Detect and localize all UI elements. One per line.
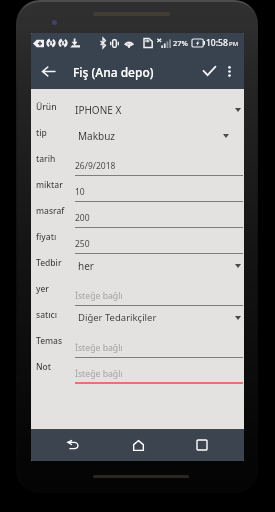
staticText: İsteğe bağlı xyxy=(75,342,123,354)
button[interactable]: tarih xyxy=(31,150,244,176)
staticText: Not xyxy=(36,361,52,373)
button[interactable]: Tedbir xyxy=(31,254,244,280)
staticText: 200 xyxy=(75,212,90,224)
staticText: Fiş (Ana depo) xyxy=(73,64,154,80)
button[interactable]: Home xyxy=(116,429,160,461)
staticText: 250 xyxy=(75,238,90,250)
staticText: masraf xyxy=(36,205,65,217)
button[interactable]: satıcı xyxy=(31,306,244,332)
button[interactable]: Ürün xyxy=(31,98,244,124)
staticText: 10:58 xyxy=(206,37,228,49)
staticText: her xyxy=(78,259,94,273)
button[interactable]: Not xyxy=(31,358,244,384)
staticText: tarih xyxy=(36,153,56,165)
staticText: İsteğe bağlı xyxy=(75,290,123,302)
button[interactable]: More options xyxy=(218,53,241,89)
button[interactable]: Navigate up xyxy=(33,53,63,89)
staticText: İsteğe bağlı xyxy=(75,368,123,380)
button[interactable]: Back xyxy=(51,429,95,461)
staticText: yer xyxy=(36,283,49,295)
staticText: 27% xyxy=(173,38,188,48)
staticText: tip xyxy=(36,127,47,139)
staticText: 10 xyxy=(75,186,85,198)
staticText: fiyatı xyxy=(36,231,57,243)
staticText: Ürün xyxy=(36,101,57,113)
button[interactable]: fiyatı xyxy=(31,228,244,254)
staticText: satıcı xyxy=(36,309,58,321)
button[interactable]: tip xyxy=(31,124,244,150)
staticText: Diğer Tedarikçiler xyxy=(78,311,157,324)
button[interactable]: yer xyxy=(31,280,244,306)
staticText: IPHONE X xyxy=(75,103,122,117)
staticText: Tedbir xyxy=(36,257,62,269)
staticText: Makbuz xyxy=(78,129,116,143)
staticText: Temas xyxy=(36,335,63,347)
button[interactable]: miktar xyxy=(31,176,244,202)
staticText: miktar xyxy=(36,179,63,191)
staticText: PM xyxy=(229,40,239,48)
button[interactable]: masraf xyxy=(31,202,244,228)
button[interactable]: Recent apps xyxy=(180,429,224,461)
button[interactable]: Save xyxy=(195,53,223,89)
button[interactable]: Temas xyxy=(31,332,244,358)
staticText: 26/9/2018 xyxy=(75,160,116,172)
